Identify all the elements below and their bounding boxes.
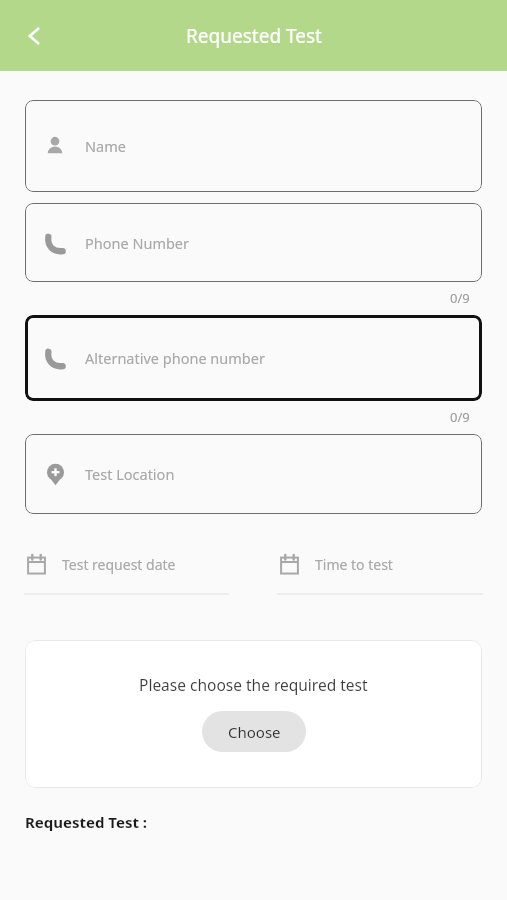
- button[interactable]: Name: [25, 100, 482, 192]
- staticText: Choose: [228, 722, 281, 742]
- staticText: 0/9: [450, 408, 470, 426]
- staticText: Test request date: [62, 555, 176, 574]
- staticText: Please choose the required test: [139, 674, 368, 695]
- staticText: Requested Test :: [25, 812, 148, 832]
- staticText: Time to test: [315, 555, 393, 574]
- button[interactable]: Test request date: [24, 552, 229, 595]
- button[interactable]: Test Location: [25, 434, 482, 514]
- staticText: Phone Number: [85, 233, 190, 253]
- button[interactable]: Time to test: [277, 552, 483, 595]
- staticText: Test Location: [85, 464, 175, 484]
- button[interactable]: Alternative phone number: [25, 315, 482, 401]
- staticText: Name: [85, 136, 126, 156]
- button[interactable]: Choose: [202, 711, 306, 752]
- button[interactable]: Phone Number: [25, 203, 482, 282]
- staticText: 0/9: [450, 289, 470, 307]
- staticText: Alternative phone number: [85, 348, 265, 368]
- staticText: Requested Test: [186, 23, 322, 49]
- button[interactable]: Back: [10, 12, 58, 60]
